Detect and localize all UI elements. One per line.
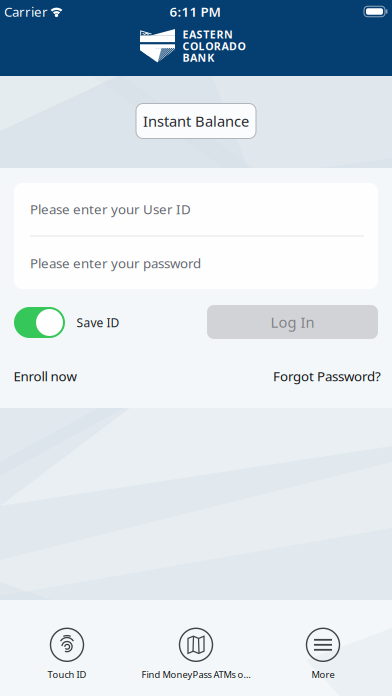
staticText: Log In xyxy=(270,312,314,332)
staticText: More xyxy=(311,668,334,681)
staticText: Please enter your User ID xyxy=(30,200,191,218)
staticText: EASTERN xyxy=(182,27,233,41)
staticText: Enroll now xyxy=(13,367,76,385)
staticText: Carrier xyxy=(4,3,48,20)
button[interactable]: Please enter your password xyxy=(30,243,364,283)
button[interactable]: Forgot Password? xyxy=(273,367,381,385)
button[interactable]: Find MoneyPass ATMs o… xyxy=(141,628,250,681)
staticText: 6:11 PM xyxy=(169,3,220,20)
button[interactable]: Save ID xyxy=(14,307,65,338)
staticText: Forgot Password? xyxy=(273,367,381,385)
staticText: Find MoneyPass ATMs o… xyxy=(141,668,250,681)
staticText: Touch ID xyxy=(47,668,86,681)
button[interactable]: Touch ID xyxy=(47,628,86,681)
button[interactable]: Enroll now xyxy=(13,367,76,385)
button[interactable]: Log In xyxy=(207,305,378,339)
staticText: COLORADO xyxy=(182,39,246,53)
button[interactable]: More xyxy=(306,628,339,681)
staticText: Save ID xyxy=(76,314,119,330)
staticText: Please enter your password xyxy=(30,254,201,272)
staticText: Instant Balance xyxy=(143,111,249,131)
staticText: BANK xyxy=(182,51,214,65)
button[interactable]: Please enter your User ID xyxy=(30,189,364,229)
button[interactable]: Instant Balance xyxy=(136,103,256,138)
